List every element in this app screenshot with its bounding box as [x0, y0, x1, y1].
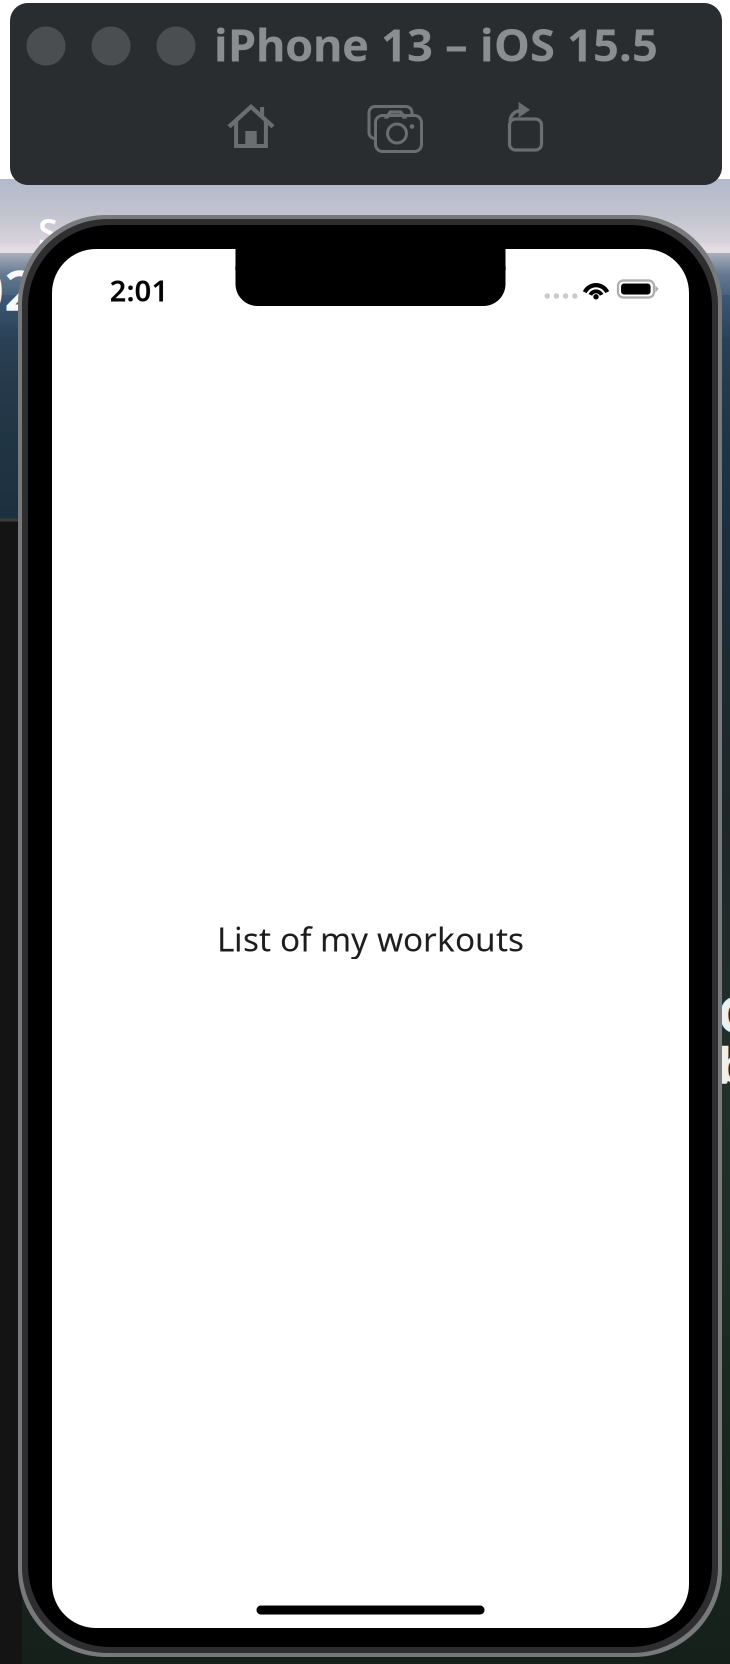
staticText: 02: [0, 252, 36, 326]
staticText: C: [717, 979, 730, 1047]
button[interactable]: Close window: [26, 26, 65, 65]
button[interactable]: Home: [226, 103, 275, 149]
staticText: 2:01: [109, 270, 168, 309]
staticText: b: [717, 1030, 730, 1098]
staticText: List of my workouts: [217, 916, 524, 961]
button[interactable]: Zoom window: [156, 26, 195, 65]
button[interactable]: Take screenshot: [367, 104, 421, 148]
staticText: iPhone 13 – iOS 15.5: [214, 14, 658, 74]
button[interactable]: Rotate device: [500, 100, 544, 152]
button[interactable]: Minimize window: [91, 26, 130, 65]
staticText: S: [38, 207, 58, 255]
